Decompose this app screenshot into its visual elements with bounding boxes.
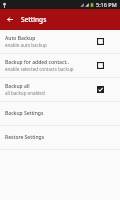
button[interactable]: Toggle: [96, 37, 105, 46]
staticText: Settings: [21, 15, 47, 24]
staticText: Backup for added contact..: [5, 59, 70, 66]
button[interactable]: Auto Backup: [0, 30, 120, 53]
staticText: Restore Settings: [5, 134, 45, 141]
button[interactable]: Navigate up: [0, 9, 19, 30]
button[interactable]: Backup Settings: [0, 102, 120, 125]
staticText: enable selected contacts backup: [5, 66, 74, 72]
staticText: all backup enabled: [5, 90, 45, 96]
staticText: Auto Backup: [5, 35, 36, 42]
button[interactable]: Backup all: [0, 78, 120, 101]
button[interactable]: Backup for added contact..: [0, 54, 120, 77]
button[interactable]: Toggle: [96, 85, 105, 94]
staticText: Backup Settings: [5, 110, 44, 117]
button[interactable]: Toggle: [96, 61, 105, 70]
staticText: 5:16 PM: [96, 1, 117, 8]
staticText: enable auto backup: [5, 42, 47, 48]
button[interactable]: Restore Settings: [0, 126, 120, 149]
staticText: Backup all: [5, 83, 30, 90]
